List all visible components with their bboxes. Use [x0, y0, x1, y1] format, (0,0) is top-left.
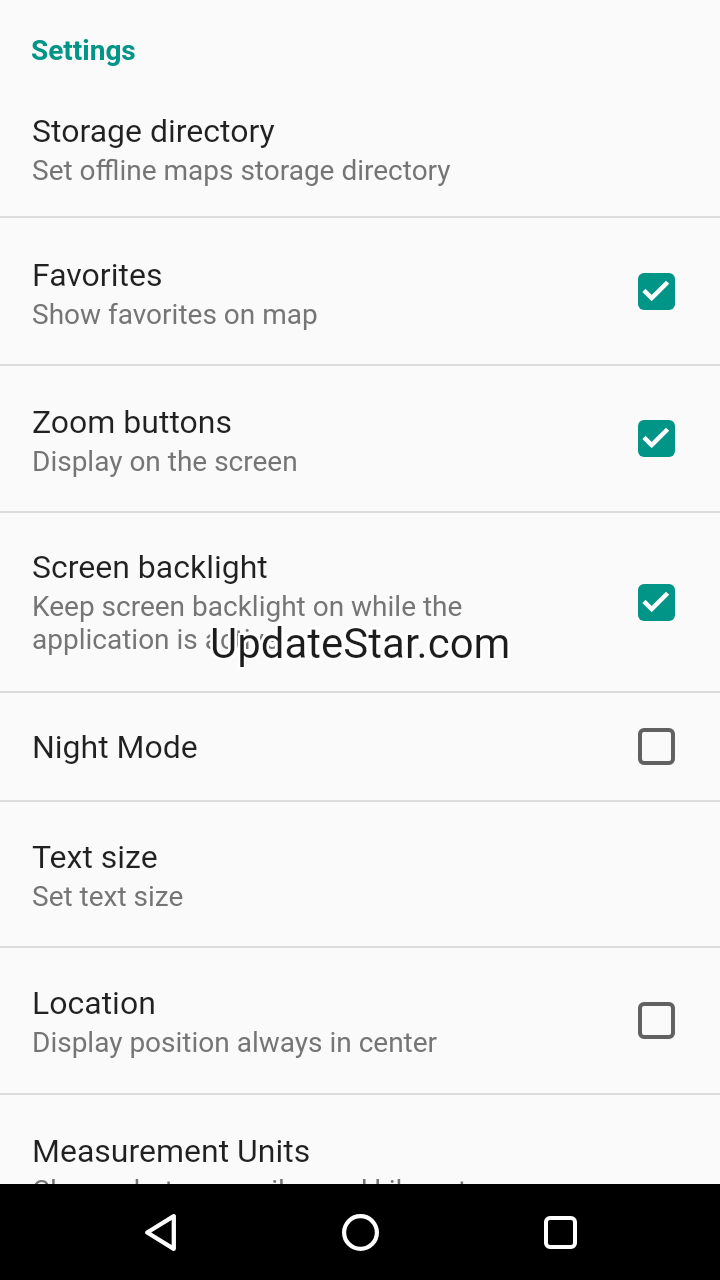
staticText: Settings — [31, 34, 136, 67]
button[interactable]: Checked option — [638, 420, 675, 457]
staticText: UpdateStar.com — [212, 619, 513, 668]
button[interactable]: Checked option — [638, 273, 675, 310]
staticText: Set offline maps storage directory — [32, 154, 451, 187]
button[interactable]: Measurement Units — [0, 1095, 720, 1215]
button[interactable]: Back — [112, 1184, 208, 1280]
staticText: UpdateStar.com — [212, 617, 513, 666]
button[interactable]: Text size — [0, 802, 720, 946]
staticText: UpdateStar.com — [210, 617, 511, 666]
staticText: UpdateStar.com — [208, 619, 509, 668]
button[interactable]: Storage directory — [0, 89, 720, 216]
button[interactable]: Location — [0, 948, 720, 1093]
button[interactable]: Screen backlight — [0, 513, 720, 691]
staticText: Show favorites on map — [32, 298, 318, 331]
staticText: UpdateStar.com — [210, 619, 511, 668]
staticText: UpdateStar.com — [210, 621, 511, 670]
staticText: UpdateStar.com — [208, 621, 509, 670]
staticText: Screen backlight — [32, 548, 268, 586]
staticText: Choose between miles and kilometers — [32, 1174, 506, 1207]
staticText: UpdateStar.com — [208, 617, 509, 666]
staticText: Set text size — [32, 880, 184, 913]
staticText: Favorites — [32, 256, 163, 294]
staticText: Zoom buttons — [32, 403, 233, 441]
staticText: Keep screen backlight on while the appli… — [32, 590, 532, 656]
staticText: Location — [32, 984, 156, 1022]
button[interactable]: Recent apps — [512, 1184, 608, 1280]
button[interactable]: Zoom buttons — [0, 366, 720, 511]
staticText: Text size — [32, 838, 158, 876]
button[interactable]: Home — [312, 1184, 408, 1280]
button[interactable]: Unchecked option — [638, 728, 675, 765]
staticText: Night Mode — [32, 728, 198, 766]
staticText: Display position always in center — [32, 1026, 438, 1059]
staticText: Measurement Units — [32, 1132, 311, 1170]
button[interactable]: Favorites — [0, 218, 720, 364]
button[interactable]: Night Mode — [0, 693, 720, 800]
button[interactable]: Checked option — [638, 584, 675, 621]
staticText: UpdateStar.com — [212, 621, 513, 670]
button[interactable]: Unchecked option — [638, 1002, 675, 1039]
staticText: Storage directory — [32, 112, 275, 150]
staticText: Display on the screen — [32, 445, 298, 478]
